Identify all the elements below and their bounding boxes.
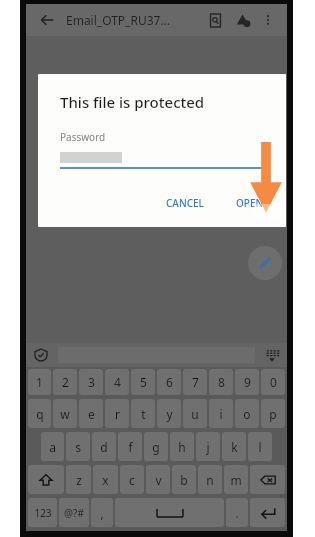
staticText: k xyxy=(231,439,238,455)
button[interactable]: f xyxy=(118,432,142,461)
button[interactable]: Secure xyxy=(30,344,52,366)
staticText: c xyxy=(129,472,135,488)
staticText: j xyxy=(206,439,210,455)
staticText: o xyxy=(243,406,251,422)
button[interactable]: w xyxy=(53,399,77,428)
staticText: l xyxy=(258,439,262,455)
button[interactable]: 3 xyxy=(79,369,103,395)
button[interactable]: x xyxy=(93,465,118,494)
button[interactable]: v xyxy=(146,465,170,494)
button[interactable]: b xyxy=(172,465,196,494)
button[interactable]: n xyxy=(198,465,222,494)
staticText: Password xyxy=(60,130,106,144)
button[interactable]: k xyxy=(222,432,246,461)
staticText: 3 xyxy=(88,374,95,390)
staticText: p xyxy=(269,406,277,422)
staticText: s xyxy=(75,439,81,455)
staticText: Email_OTP_RU37... xyxy=(66,12,171,28)
staticText: y xyxy=(166,406,173,422)
staticText: t xyxy=(141,406,146,422)
button[interactable]: Compose xyxy=(248,246,282,280)
staticText: d xyxy=(100,439,108,455)
staticText: g xyxy=(152,439,160,455)
button[interactable]: s xyxy=(66,432,90,461)
button[interactable]: Enter xyxy=(250,498,285,527)
staticText: r xyxy=(115,406,120,422)
button[interactable]: Add to Drive xyxy=(231,8,255,32)
staticText: a xyxy=(49,439,56,455)
staticText: 0 xyxy=(270,374,277,390)
button[interactable]: 6 xyxy=(157,369,181,395)
staticText: 2 xyxy=(62,374,69,390)
button[interactable]: 1 xyxy=(28,369,51,395)
button[interactable]: Backspace xyxy=(250,465,285,494)
staticText: 1 xyxy=(36,374,43,390)
button[interactable]: i xyxy=(209,399,233,428)
staticText: i xyxy=(219,406,223,422)
staticText: f xyxy=(128,439,133,455)
button[interactable]: r xyxy=(105,399,129,428)
button[interactable]: Print xyxy=(203,8,227,32)
staticText: m xyxy=(230,472,242,488)
button[interactable]: Space xyxy=(115,498,224,527)
staticText: 6 xyxy=(166,374,173,390)
staticText: u xyxy=(191,406,199,422)
button[interactable]: z xyxy=(66,465,91,494)
staticText: 123 xyxy=(34,506,52,520)
button[interactable]: y xyxy=(157,399,181,428)
button[interactable]: Back xyxy=(34,7,60,33)
button[interactable]: g xyxy=(144,432,168,461)
button[interactable]: Hide keyboard xyxy=(261,344,283,366)
button[interactable]: OPEN xyxy=(228,191,272,215)
button[interactable]: j xyxy=(196,432,220,461)
button[interactable]: 8 xyxy=(209,369,233,395)
button[interactable]: 9 xyxy=(235,369,259,395)
button[interactable]: l xyxy=(248,432,272,461)
staticText: This file is protected xyxy=(60,92,205,112)
staticText: z xyxy=(76,472,82,488)
staticText: 4 xyxy=(114,374,121,390)
button[interactable]: h xyxy=(170,432,194,461)
button[interactable]: Shift xyxy=(28,465,64,494)
staticText: CANCEL xyxy=(166,196,204,210)
button[interactable]: t xyxy=(131,399,155,428)
staticText: q xyxy=(36,406,44,422)
staticText: w xyxy=(60,406,70,422)
staticText: . xyxy=(235,505,239,521)
button[interactable]: . xyxy=(226,498,248,527)
button[interactable]: 7 xyxy=(183,369,207,395)
button[interactable]: 0 xyxy=(261,369,285,395)
staticText: 5 xyxy=(140,374,147,390)
staticText: v xyxy=(155,472,162,488)
button[interactable]: 5 xyxy=(131,369,155,395)
staticText: h xyxy=(178,439,186,455)
button[interactable]: m xyxy=(224,465,248,494)
staticText: e xyxy=(88,406,95,422)
button[interactable]: d xyxy=(92,432,116,461)
button[interactable]: @?# xyxy=(59,498,89,527)
staticText: n xyxy=(206,472,214,488)
button[interactable]: p xyxy=(261,399,285,428)
button[interactable]: o xyxy=(235,399,259,428)
staticText: @?# xyxy=(64,506,84,520)
staticText: 9 xyxy=(244,374,251,390)
button[interactable]: 123 xyxy=(28,498,57,527)
staticText: OPEN xyxy=(236,196,264,210)
button[interactable]: q xyxy=(28,399,51,428)
staticText: b xyxy=(180,472,188,488)
button[interactable]: More options xyxy=(257,9,279,31)
button[interactable]: c xyxy=(120,465,144,494)
staticText: x xyxy=(102,472,109,488)
staticText: , xyxy=(100,505,104,521)
button[interactable]: 2 xyxy=(53,369,77,395)
button[interactable]: a xyxy=(41,432,64,461)
button[interactable]: , xyxy=(91,498,113,527)
button[interactable]: CANCEL xyxy=(158,191,212,215)
staticText: 8 xyxy=(218,374,225,390)
staticText: 7 xyxy=(192,374,199,390)
button[interactable]: u xyxy=(183,399,207,428)
button[interactable]: 4 xyxy=(105,369,129,395)
button[interactable]: e xyxy=(79,399,103,428)
